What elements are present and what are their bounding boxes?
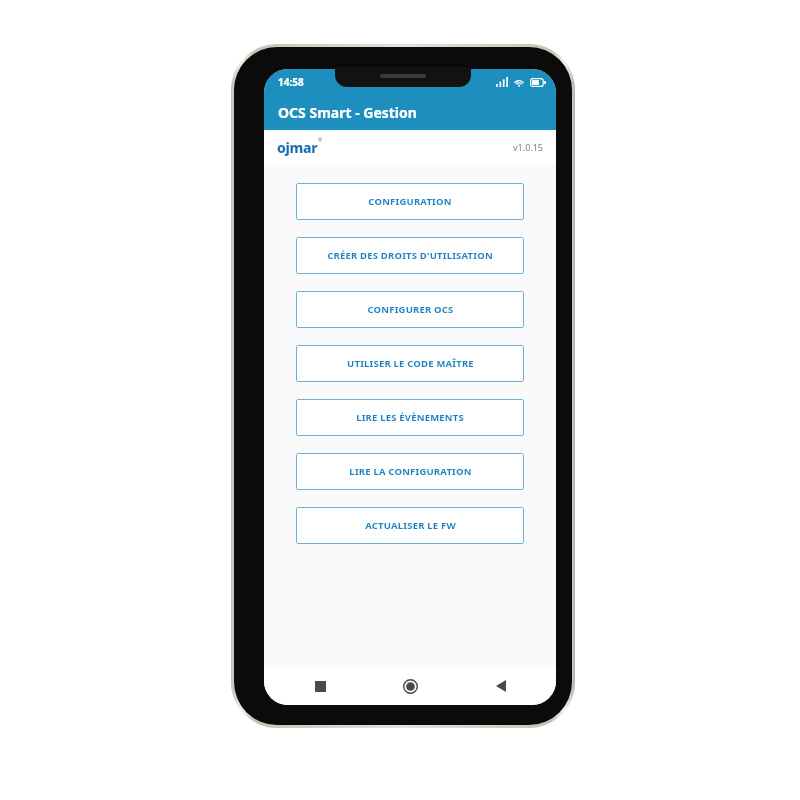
staticText: ojmar [277, 138, 318, 157]
button[interactable]: CONFIGURER OCS [296, 291, 524, 328]
button[interactable]: LIRE LA CONFIGURATION [296, 453, 524, 490]
staticText: OCS Smart - Gestion [278, 103, 417, 122]
button[interactable]: Back [466, 667, 536, 705]
button[interactable]: Home [375, 667, 445, 705]
staticText: LIRE LES ÉVÈNEMENTS [356, 411, 464, 424]
button[interactable]: CRÉER DES DROITS D'UTILISATION [296, 237, 524, 274]
button[interactable]: CONFIGURATION [296, 183, 524, 220]
button[interactable]: LIRE LES ÉVÈNEMENTS [296, 399, 524, 436]
staticText: CONFIGURER OCS [367, 303, 454, 316]
staticText: v1.0.15 [513, 141, 543, 153]
button[interactable]: ACTUALISER LE FW [296, 507, 524, 544]
staticText: UTILISER LE CODE MAÎTRE [347, 357, 474, 370]
staticText: ® [318, 137, 323, 144]
staticText: 14:58 [278, 75, 304, 89]
button[interactable]: Recents [285, 667, 355, 705]
staticText: ACTUALISER LE FW [365, 519, 456, 532]
staticText: LIRE LA CONFIGURATION [349, 465, 472, 478]
staticText: CONFIGURATION [368, 195, 452, 208]
staticText: CRÉER DES DROITS D'UTILISATION [327, 249, 493, 262]
button[interactable]: UTILISER LE CODE MAÎTRE [296, 345, 524, 382]
